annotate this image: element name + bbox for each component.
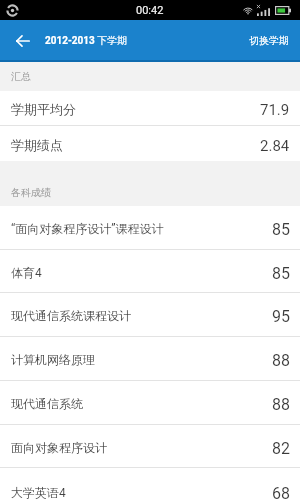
button[interactable]: 现代通信系统 xyxy=(0,381,300,424)
staticText: 切换学期 xyxy=(249,34,289,47)
button[interactable]: 体育4 xyxy=(0,250,300,292)
button[interactable]: 现代通信系统课程设计 xyxy=(0,293,300,336)
button[interactable]: 学期绩点 xyxy=(0,126,300,161)
staticText: 00:42 xyxy=(136,4,164,17)
staticText: 95 xyxy=(272,307,290,326)
staticText: 2012-2013 下学期 xyxy=(45,34,128,47)
staticText: 面向对象程序设计 xyxy=(11,440,272,455)
staticText: 85 xyxy=(272,220,290,239)
staticText: 2.84 xyxy=(260,137,290,155)
staticText: 计算机网络原理 xyxy=(11,352,272,367)
staticText: 68 xyxy=(272,484,290,500)
staticText: 体育4 xyxy=(11,265,272,280)
button[interactable]: 大学英语4 xyxy=(0,468,300,500)
staticText: 现代通信系统课程设计 xyxy=(11,308,272,323)
button[interactable]: 切换学期 xyxy=(238,25,300,56)
staticText: 现代通信系统 xyxy=(11,396,272,411)
staticText: 学期绩点 xyxy=(11,137,260,153)
staticText: “面向对象程序设计”课程设计 xyxy=(11,221,272,236)
staticText: 71.9 xyxy=(260,101,290,119)
staticText: 88 xyxy=(272,395,290,414)
staticText: 汇总 xyxy=(11,70,31,83)
button[interactable]: “面向对象程序设计”课程设计 xyxy=(0,206,300,249)
staticText: 85 xyxy=(272,264,290,283)
staticText: 各科成绩 xyxy=(11,186,51,199)
staticText: 88 xyxy=(272,351,290,370)
staticText: 大学英语4 xyxy=(11,485,272,500)
button[interactable]: 学期平均分 xyxy=(0,91,300,125)
button[interactable]: 计算机网络原理 xyxy=(0,337,300,380)
staticText: 82 xyxy=(272,439,290,458)
staticText: 学期平均分 xyxy=(11,101,260,117)
button[interactable]: 面向对象程序设计 xyxy=(0,425,300,467)
button[interactable]: Back xyxy=(0,20,46,60)
